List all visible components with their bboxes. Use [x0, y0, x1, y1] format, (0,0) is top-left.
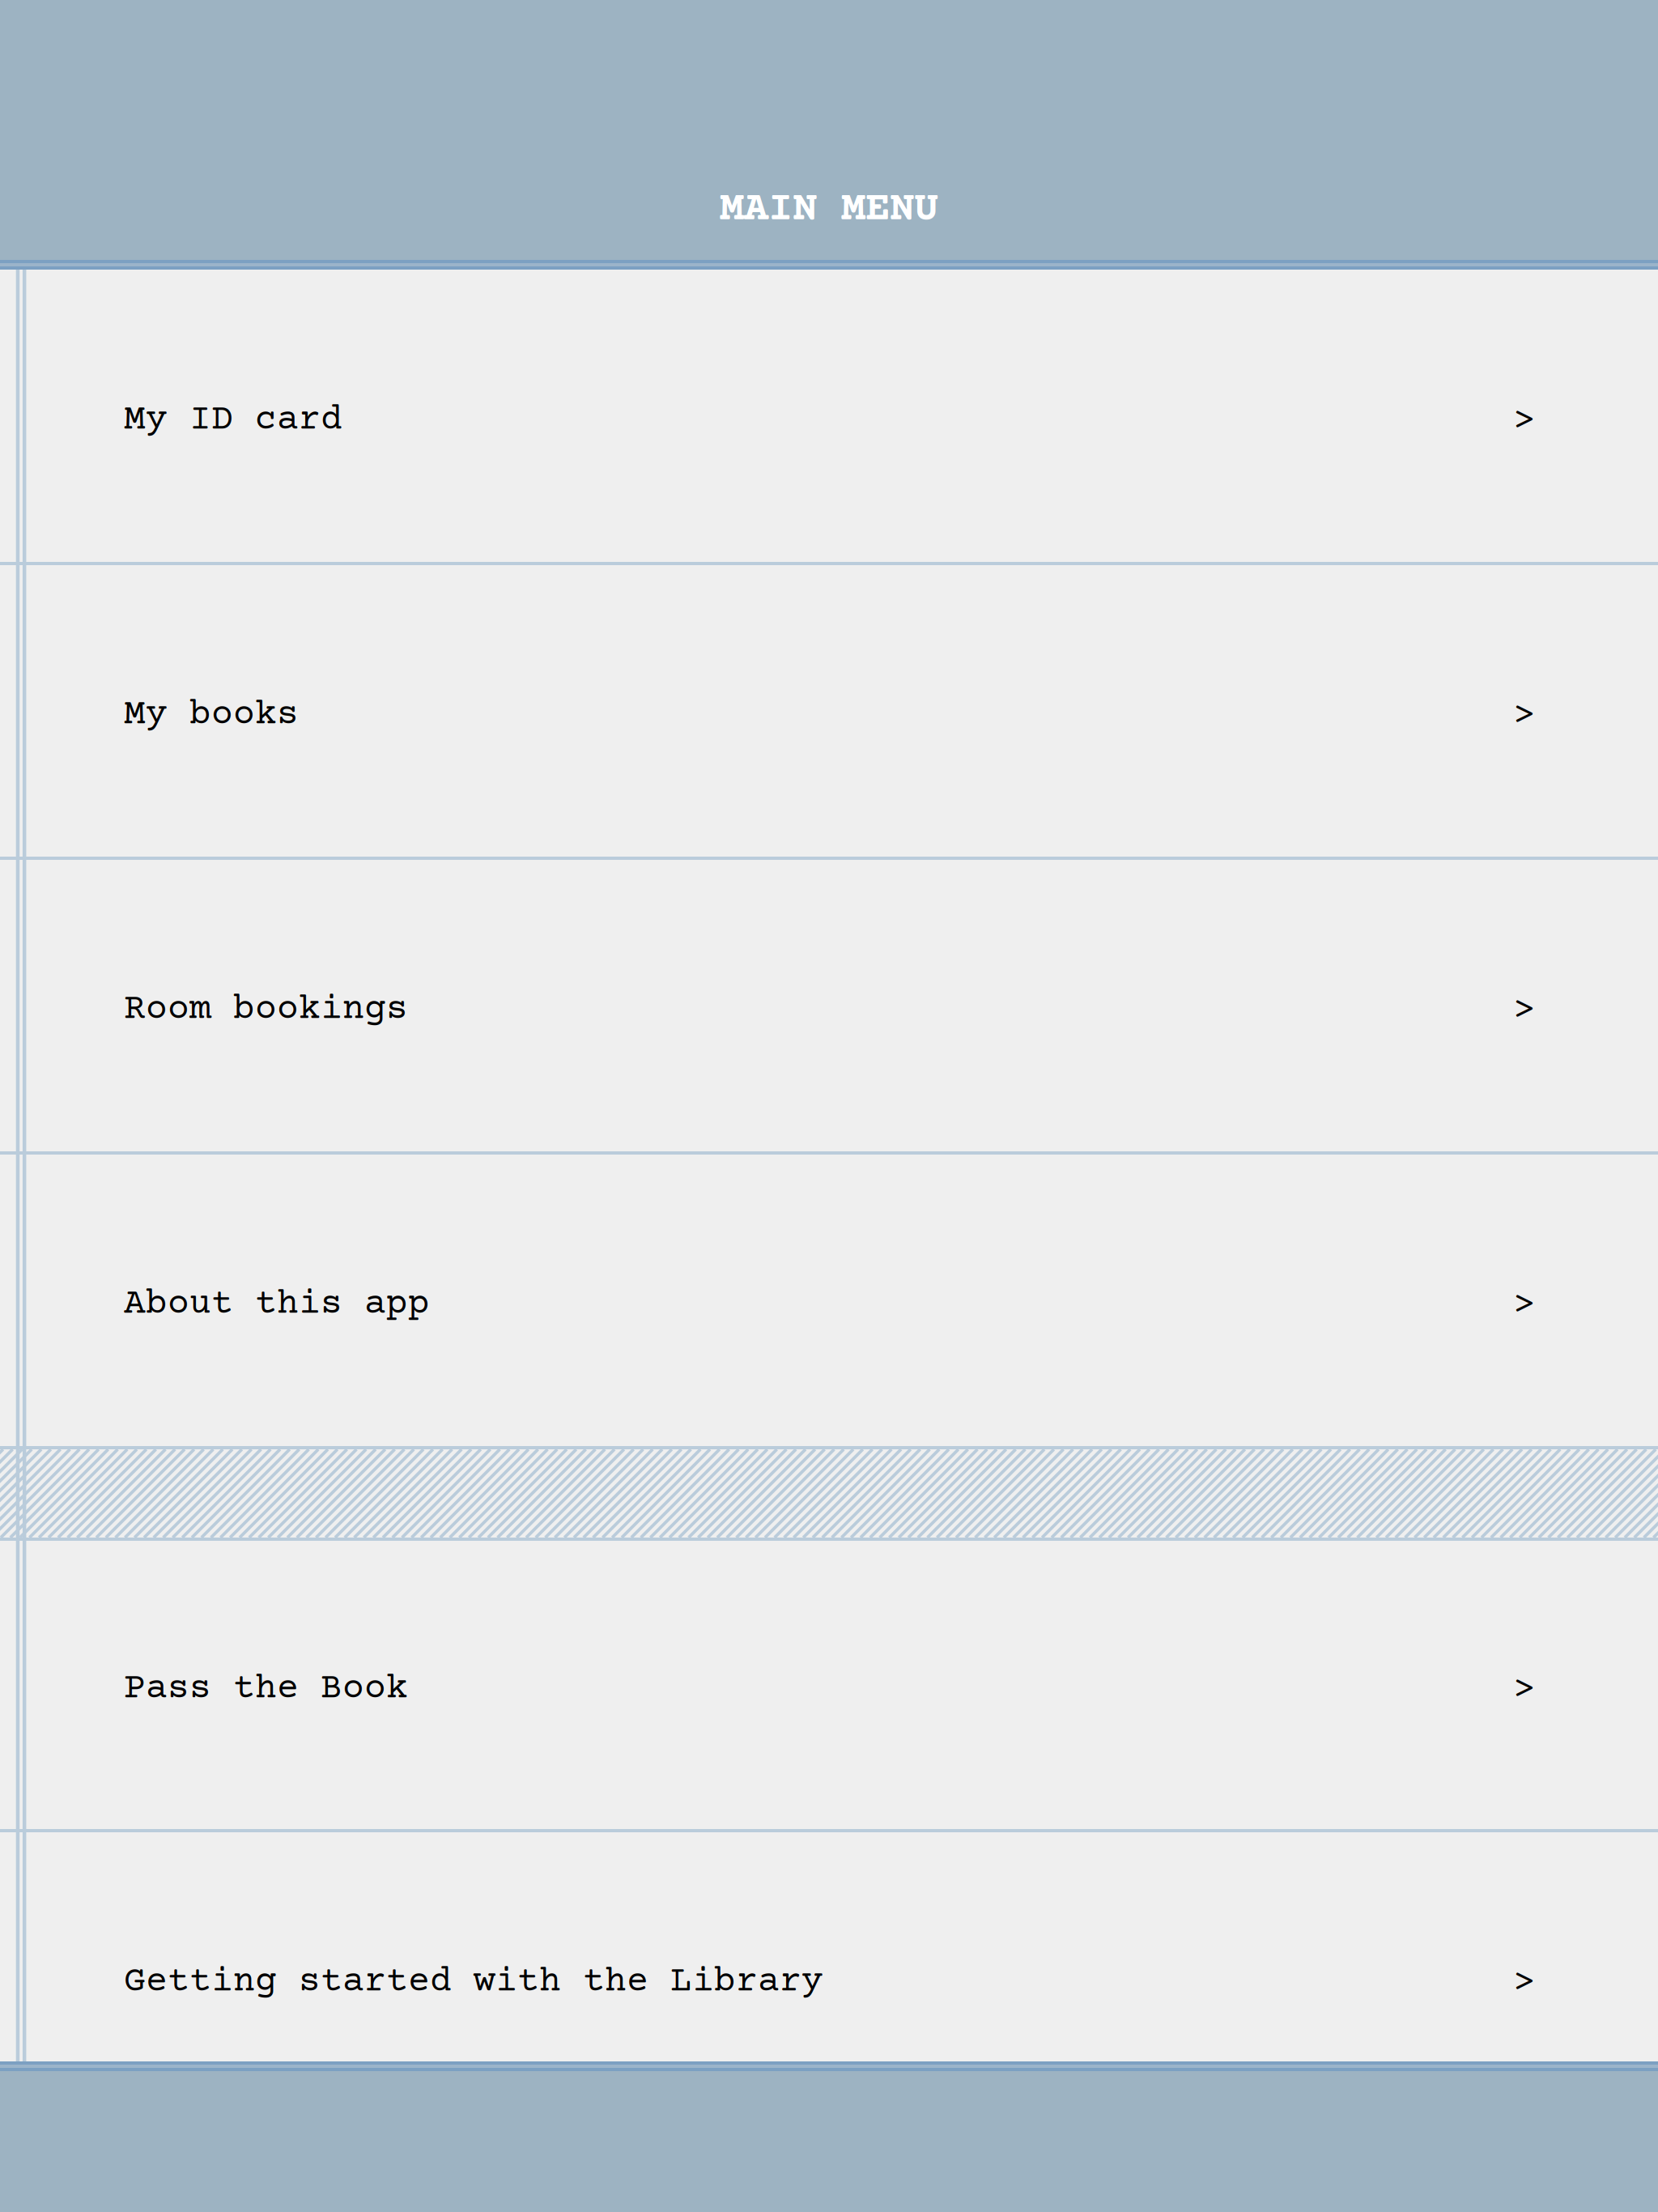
staticText: Pass the Book	[124, 1669, 408, 1710]
button[interactable]: Pass the Book	[0, 1541, 1658, 1829]
staticText: >	[1513, 696, 1535, 737]
staticText: Getting started with the Library	[124, 1962, 823, 2003]
staticText: About this app	[124, 1284, 430, 1325]
staticText: >	[1513, 991, 1535, 1032]
staticText: My books	[124, 695, 299, 736]
staticText: >	[1513, 402, 1535, 442]
staticText: >	[1513, 1670, 1535, 1711]
button[interactable]: About this app	[0, 1155, 1658, 1446]
button[interactable]: Getting started with the Library	[0, 1832, 1658, 2124]
button[interactable]: My ID card	[0, 270, 1658, 562]
staticText: MAIN MENU	[720, 187, 938, 233]
button[interactable]: My books	[0, 565, 1658, 857]
staticText: My ID card	[124, 400, 342, 441]
staticText: Room bookings	[124, 990, 408, 1030]
staticText: >	[1513, 1963, 1535, 2004]
staticText: >	[1513, 1286, 1535, 1326]
button[interactable]: Room bookings	[0, 860, 1658, 1151]
